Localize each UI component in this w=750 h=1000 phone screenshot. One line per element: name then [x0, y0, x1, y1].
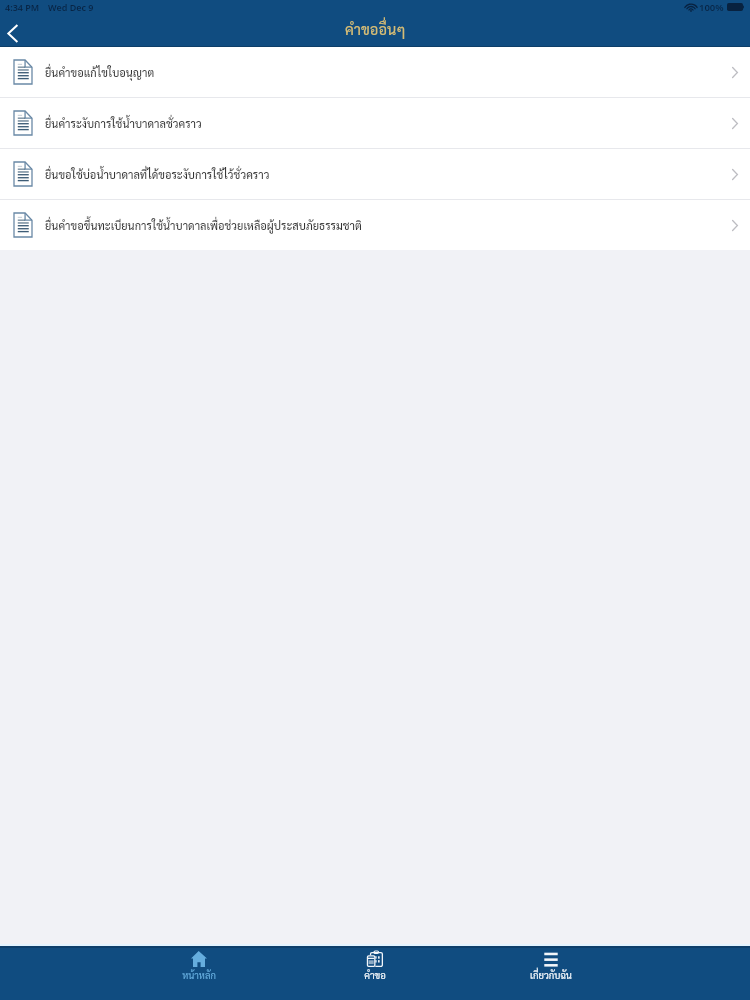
button[interactable]: Requests: [287, 951, 463, 1000]
other: Home: [191, 951, 207, 967]
other: About me: [543, 951, 559, 967]
staticText: ยื่นคำขอขึ้นทะเบียนการใช้น้ำบาดาลเพื่อช่…: [45, 218, 362, 232]
staticText: 4:34 PM: [5, 1, 40, 13]
staticText: เกี่ยวกับฉัน: [530, 969, 572, 981]
staticText: คำขออื่นๆ: [345, 20, 406, 39]
button[interactable]: ยื่นคำขอขึ้นทะเบียนการใช้น้ำบาดาลเพื่อช่…: [0, 200, 750, 250]
staticText: 100%: [699, 1, 724, 14]
staticText: หน้าหลัก: [182, 969, 216, 981]
button[interactable]: ยื่นคำขอแก้ไขใบอนุญาต: [0, 47, 750, 97]
button[interactable]: ยื่นคำระงับการใช้น้ำบาดาลชั่วคราว: [0, 98, 750, 148]
other: Requests: [367, 951, 383, 967]
staticText: ยื่นขอใช้บ่อน้ำบาดาลที่ได้ขอระงับการใช้ไ…: [45, 167, 270, 181]
staticText: Wed Dec 9: [48, 1, 94, 13]
button[interactable]: Home: [111, 951, 287, 1000]
button[interactable]: About me: [463, 951, 639, 1000]
button[interactable]: Back: [0, 19, 24, 47]
button[interactable]: ยื่นขอใช้บ่อน้ำบาดาลที่ได้ขอระงับการใช้ไ…: [0, 149, 750, 199]
staticText: ยื่นคำระงับการใช้น้ำบาดาลชั่วคราว: [45, 116, 202, 130]
staticText: คำขอ: [364, 969, 386, 981]
staticText: ยื่นคำขอแก้ไขใบอนุญาต: [45, 65, 155, 79]
